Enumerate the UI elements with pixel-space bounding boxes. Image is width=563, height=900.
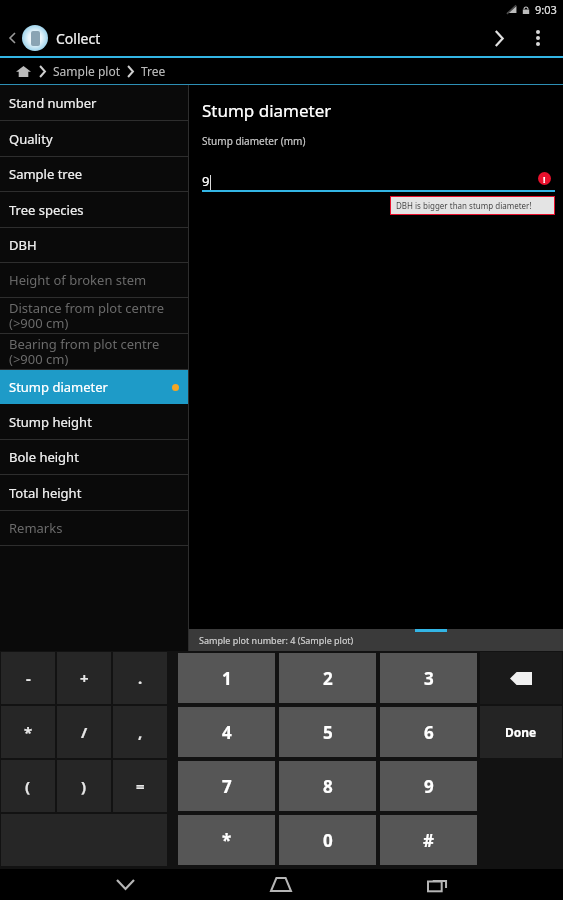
staticText: / — [81, 722, 88, 742]
button[interactable]: DBH — [0, 228, 188, 262]
button[interactable]: 9 — [380, 761, 477, 811]
button[interactable]: # — [380, 815, 477, 865]
button[interactable]: Up, Collect — [4, 25, 105, 51]
staticText: ) — [81, 776, 87, 796]
button[interactable]: 3 — [380, 653, 477, 703]
staticText: Remarks — [9, 519, 63, 537]
button[interactable]: Quality — [0, 121, 188, 156]
button[interactable]: 1 — [178, 653, 275, 703]
staticText: Sample plot number: 4 (Sample plot) — [199, 634, 354, 646]
staticText: 1 — [222, 667, 232, 690]
button[interactable]: 8 — [279, 761, 376, 811]
button[interactable]: * — [178, 815, 275, 865]
staticText: Tree species — [9, 201, 84, 219]
staticText: 9:03 — [535, 2, 557, 17]
button[interactable]: Distance from plot centre (>900 cm) — [0, 298, 188, 333]
staticText: 9 — [202, 172, 210, 190]
button[interactable]: Sample tree — [0, 157, 188, 191]
staticText: Stump diameter — [202, 99, 332, 122]
button[interactable]: ( — [1, 760, 55, 812]
button[interactable]: Next — [479, 19, 517, 57]
button[interactable]: 2 — [279, 653, 376, 703]
staticText: Stump diameter — [9, 378, 108, 396]
button[interactable]: 7 — [178, 761, 275, 811]
staticText: Quality — [9, 130, 53, 148]
staticText: Height of broken stem — [9, 271, 147, 289]
button[interactable]: Hide keyboard — [95, 869, 155, 900]
staticText: Sample tree — [9, 165, 83, 183]
button[interactable]: = — [113, 760, 167, 812]
staticText: # — [423, 829, 434, 852]
button[interactable]: Tree species — [0, 192, 188, 227]
staticText: 0 — [323, 829, 333, 852]
button[interactable]: Remarks — [0, 511, 188, 545]
staticText: 4 — [222, 721, 232, 744]
button[interactable]: * — [1, 706, 55, 758]
staticText: - — [26, 668, 31, 688]
staticText: 9 — [424, 775, 434, 798]
staticText: Collect — [56, 29, 101, 48]
button[interactable]: Stump diameter — [0, 370, 188, 404]
button[interactable]: , — [113, 706, 167, 758]
button[interactable]: Bearing from plot centre (>900 cm) — [0, 334, 188, 369]
button[interactable]: 4 — [178, 707, 275, 757]
staticText: 7 — [222, 775, 232, 798]
staticText: 8 — [323, 775, 333, 798]
button[interactable]: Sample plot — [53, 63, 120, 79]
button[interactable]: 5 — [279, 707, 376, 757]
staticText: = — [136, 776, 145, 796]
staticText: , — [138, 722, 143, 742]
button[interactable]: . — [113, 652, 167, 704]
button[interactable]: - — [1, 652, 55, 704]
button[interactable]: 6 — [380, 707, 477, 757]
staticText: ! — [543, 173, 546, 185]
staticText: 5 — [323, 721, 333, 744]
staticText: Distance from plot centre (>900 cm) — [9, 299, 165, 332]
staticText: * — [24, 722, 33, 742]
button[interactable]: ) — [57, 760, 111, 812]
staticText: DBH is bigger than stump diameter! — [396, 200, 532, 211]
button[interactable]: Home — [251, 869, 311, 900]
button[interactable]: Recent apps — [407, 869, 467, 900]
staticText: + — [80, 668, 89, 688]
button[interactable]: More options — [521, 21, 555, 55]
staticText: . — [138, 668, 143, 688]
staticText: Stand number — [9, 94, 97, 112]
button[interactable]: Height of broken stem — [0, 263, 188, 297]
button[interactable]: / — [57, 706, 111, 758]
staticText: Done — [505, 724, 537, 740]
staticText: 3 — [424, 667, 434, 690]
button[interactable]: + — [57, 652, 111, 704]
staticText: 2 — [323, 667, 333, 690]
staticText: 6 — [424, 721, 434, 744]
staticText: Stump height — [9, 413, 92, 431]
staticText: Bearing from plot centre (>900 cm) — [9, 335, 160, 368]
staticText: DBH — [9, 236, 37, 254]
staticText: ( — [25, 776, 31, 796]
button[interactable]: Backspace — [480, 652, 562, 704]
button[interactable]: Stump height — [0, 404, 188, 439]
button[interactable]: Done — [480, 706, 562, 758]
staticText: Total height — [9, 484, 82, 502]
staticText: Bole height — [9, 448, 79, 466]
button[interactable]: Bole height — [0, 440, 188, 474]
button[interactable]: Home — [12, 60, 34, 82]
button[interactable]: 0 — [279, 815, 376, 865]
staticText: * — [222, 829, 232, 852]
button[interactable]: Total height — [0, 475, 188, 510]
button[interactable]: 9 — [202, 168, 555, 190]
staticText: Stump diameter (mm) — [202, 134, 306, 148]
button[interactable]: Stand number — [0, 85, 188, 120]
button[interactable]: Tree — [141, 63, 166, 79]
